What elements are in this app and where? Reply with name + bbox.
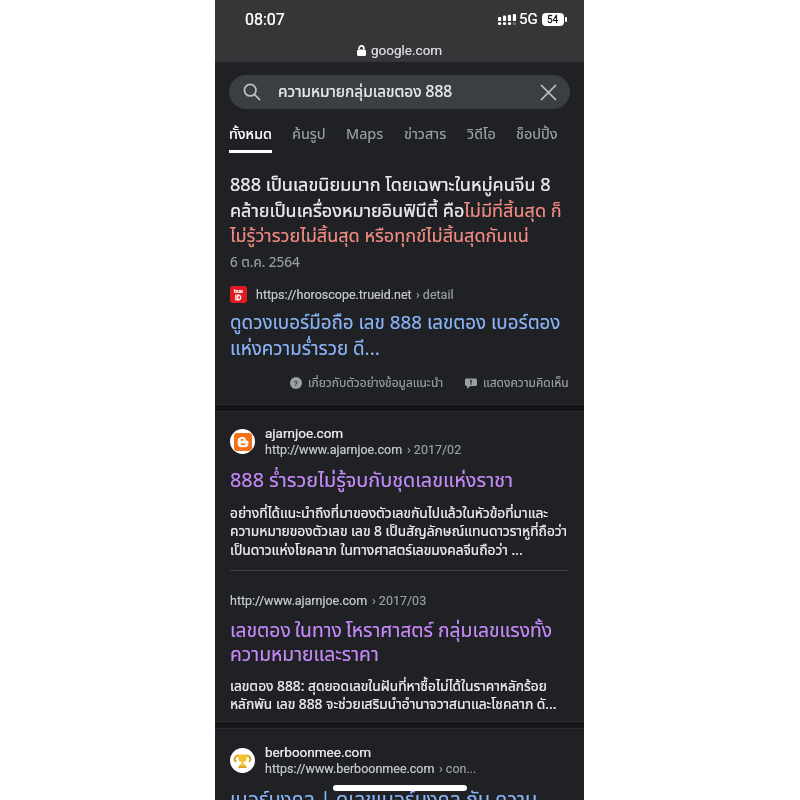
staticText: ajarnjoe.com (265, 425, 344, 441)
staticText: Maps (346, 124, 384, 146)
staticText: berboonmee.com (265, 744, 372, 760)
button[interactable]: ช็อปปิ้ง (516, 124, 558, 150)
button[interactable]: ทั้งหมด (229, 124, 272, 153)
staticText: อย่างที่ได้แนะนำถึงที่มาของตัวเลขกันไปแล… (230, 503, 568, 562)
button[interactable]: ajarnjoe.com (230, 425, 462, 457)
staticText: http://www.ajarnjoe.com (265, 442, 403, 457)
staticText: ทั้งหมด (229, 124, 272, 146)
staticText: ช็อปปิ้ง (516, 124, 558, 146)
button[interactable]: แสดงความคิดเห็น (465, 374, 569, 392)
staticText: › 2017/03 (372, 593, 427, 608)
staticText: วิดีโอ (467, 124, 496, 146)
staticText: ความหมายกลุ่มเลขตอง 888 (278, 81, 453, 104)
staticText: แสดงความคิดเห็น (483, 374, 569, 392)
button[interactable]: ดูดวงเบอร์มือถือ เลข 888 เลขตอง เบอร์ตอง… (230, 309, 569, 364)
button[interactable]: 888 ร่ำรวยไม่รู้จบกับชุดเลขแห่งราชา (230, 466, 514, 496)
button[interactable]: berboonmee.com (230, 744, 477, 776)
staticText: ข่าวสาร (404, 124, 447, 146)
staticText: 6 ต.ค. 2564 (230, 253, 300, 273)
staticText: https://horoscope.trueid.net (256, 287, 412, 302)
button[interactable]: ? (290, 374, 444, 392)
button[interactable]: Clear search (538, 82, 558, 102)
button[interactable]: ความหมายกลุ่มเลขตอง 888 (229, 75, 570, 109)
button[interactable]: เลขตอง ในทาง โหราศาสตร์ กลุ่มเลขแรงทั้ง … (230, 617, 553, 669)
button[interactable]: Maps (346, 124, 384, 150)
staticText: iD (235, 294, 242, 302)
button[interactable]: http://www.ajarnjoe.com (230, 593, 427, 608)
staticText: google.com (371, 42, 443, 58)
staticText: › detail (416, 287, 454, 302)
button[interactable]: เบอร์มงคล | ดูเลขเบอร์มงคล กับ ความ (230, 785, 538, 800)
staticText: 54 (547, 14, 559, 26)
staticText: ค้นรูป (292, 124, 326, 146)
staticText: เลขตอง 888: สุดยอดเลขในฝันที่หาซื้อไม่ได… (230, 676, 557, 716)
button[interactable]: true (230, 286, 454, 303)
staticText: › con... (439, 761, 477, 776)
staticText: เกี่ยวกับตัวอย่างข้อมูลแนะนำ (308, 374, 444, 392)
button[interactable]: ค้นรูป (292, 124, 326, 150)
staticText: 888 เป็นเลขนิยมมาก โดยเฉพาะในหมู่คนจีน 8… (230, 172, 569, 250)
staticText: https://www.berboonmee.com (265, 761, 435, 776)
staticText: true (234, 288, 243, 294)
staticText: http://www.ajarnjoe.com (230, 593, 368, 608)
staticText: › 2017/02 (407, 442, 462, 457)
staticText: ? (294, 379, 298, 388)
button[interactable]: วิดีโอ (467, 124, 496, 150)
button[interactable]: ข่าวสาร (404, 124, 447, 150)
staticText: 08:07 (245, 10, 285, 29)
staticText: 5G (519, 10, 538, 28)
